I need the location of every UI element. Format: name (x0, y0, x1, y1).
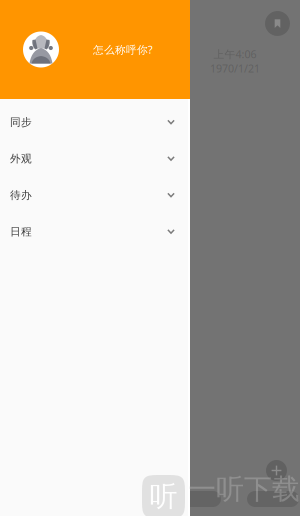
button[interactable]: 日程 (0, 213, 190, 250)
button[interactable]: Sort (247, 491, 299, 507)
staticText: 一听下载 (188, 472, 300, 506)
button[interactable]: 同步 (0, 104, 190, 140)
staticText: 1970/1/21 (210, 61, 260, 75)
button[interactable]: Add (264, 458, 289, 483)
button[interactable]: Bookmarks (263, 9, 292, 38)
staticText: 同步 (10, 116, 32, 129)
button[interactable]: 外观 (0, 140, 190, 177)
staticText: 怎么称呼你? (93, 42, 153, 57)
staticText: 上午4:06 (213, 47, 256, 61)
staticText: 外观 (10, 152, 32, 165)
button[interactable]: Filter (163, 491, 221, 507)
staticText: 听 (149, 479, 177, 514)
staticText: 待办 (10, 189, 32, 202)
button[interactable]: 待办 (0, 177, 190, 213)
staticText: 日程 (10, 225, 32, 238)
